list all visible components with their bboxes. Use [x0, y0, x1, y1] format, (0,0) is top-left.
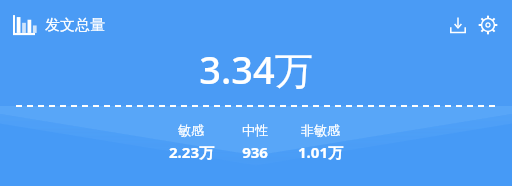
- staticText: 发文总量: [45, 16, 105, 35]
- button[interactable]: 非敏感: [288, 122, 352, 162]
- staticText: 936: [242, 142, 268, 162]
- button[interactable]: Settings: [474, 11, 502, 39]
- button[interactable]: 中性: [228, 122, 282, 162]
- staticText: 3.34万: [199, 43, 313, 95]
- staticText: 2.23万: [169, 142, 214, 162]
- button[interactable]: 敏感: [160, 122, 222, 162]
- staticText: 1.01万: [298, 142, 343, 162]
- staticText: 中性: [242, 122, 268, 138]
- staticText: 敏感: [178, 122, 204, 138]
- button[interactable]: Download: [444, 11, 472, 39]
- staticText: 非敏感: [301, 122, 340, 138]
- button[interactable]: 发文总量: [13, 10, 105, 40]
